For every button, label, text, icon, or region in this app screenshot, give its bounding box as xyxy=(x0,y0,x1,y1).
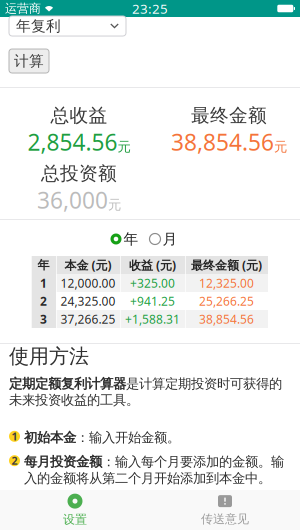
staticText: 运营商 xyxy=(5,1,41,16)
staticText: 年复利 xyxy=(16,17,61,35)
staticText: 本金 (元) xyxy=(64,257,111,273)
staticText: 3 xyxy=(40,311,47,327)
staticText: 元 xyxy=(117,139,130,155)
staticText: 1 xyxy=(40,275,47,291)
staticText: 年 xyxy=(123,230,138,248)
staticText: 投资期限：输入投资期。 xyxy=(24,494,167,511)
staticText: 37,266.25 xyxy=(60,311,115,327)
staticText: 定期定额复利计算器是计算定期投资时可获得的未来投资收益的工具。 xyxy=(9,376,282,408)
staticText: 2 xyxy=(40,293,47,309)
button[interactable]: 设置 xyxy=(0,490,150,530)
staticText: 年 xyxy=(37,258,49,272)
staticText: 计算 xyxy=(14,52,44,70)
button[interactable]: 年复利 xyxy=(9,16,126,36)
staticText: 23:25 xyxy=(132,0,168,17)
staticText: 传送意见 xyxy=(201,512,249,526)
staticText: 元 xyxy=(108,197,121,213)
staticText: 2,854.56 xyxy=(27,127,117,157)
staticText: 每月投资金额：输入每个月要添加的金额。输入的金额将从第二个月开始添加到本金中。 xyxy=(24,454,284,486)
staticText: 最终金额 xyxy=(191,104,267,127)
staticText: 38,854.56 xyxy=(171,127,274,157)
staticText: 1 xyxy=(11,429,17,443)
staticText: +1,588.31 xyxy=(125,311,180,327)
staticText: 设置 xyxy=(63,512,87,527)
button[interactable]: 年 xyxy=(110,230,138,248)
staticText: 总投资额 xyxy=(41,162,117,185)
staticText: 使用方法 xyxy=(9,344,89,369)
staticText: 月 xyxy=(162,230,177,248)
staticText: 36,000 xyxy=(37,185,108,215)
staticText: 38,854.56 xyxy=(199,311,254,327)
staticText: 2 xyxy=(11,454,17,468)
staticText: 最终金额 (元) xyxy=(191,257,262,273)
button[interactable]: 计算 xyxy=(9,49,49,73)
button[interactable]: 传送意见 xyxy=(150,490,300,530)
staticText: 总收益 xyxy=(50,104,107,127)
staticText: 24,325.00 xyxy=(60,293,115,309)
staticText: +941.25 xyxy=(130,293,175,309)
staticText: 初始本金：输入开始金额。 xyxy=(24,429,180,446)
staticText: 12,325.00 xyxy=(199,275,254,291)
staticText: +325.00 xyxy=(130,275,175,291)
button[interactable]: 月 xyxy=(149,230,177,248)
staticText: 12,000.00 xyxy=(60,275,115,291)
staticText: 25,266.25 xyxy=(199,293,254,309)
staticText: 元 xyxy=(274,139,287,155)
staticText: 收益 (元) xyxy=(129,257,176,273)
